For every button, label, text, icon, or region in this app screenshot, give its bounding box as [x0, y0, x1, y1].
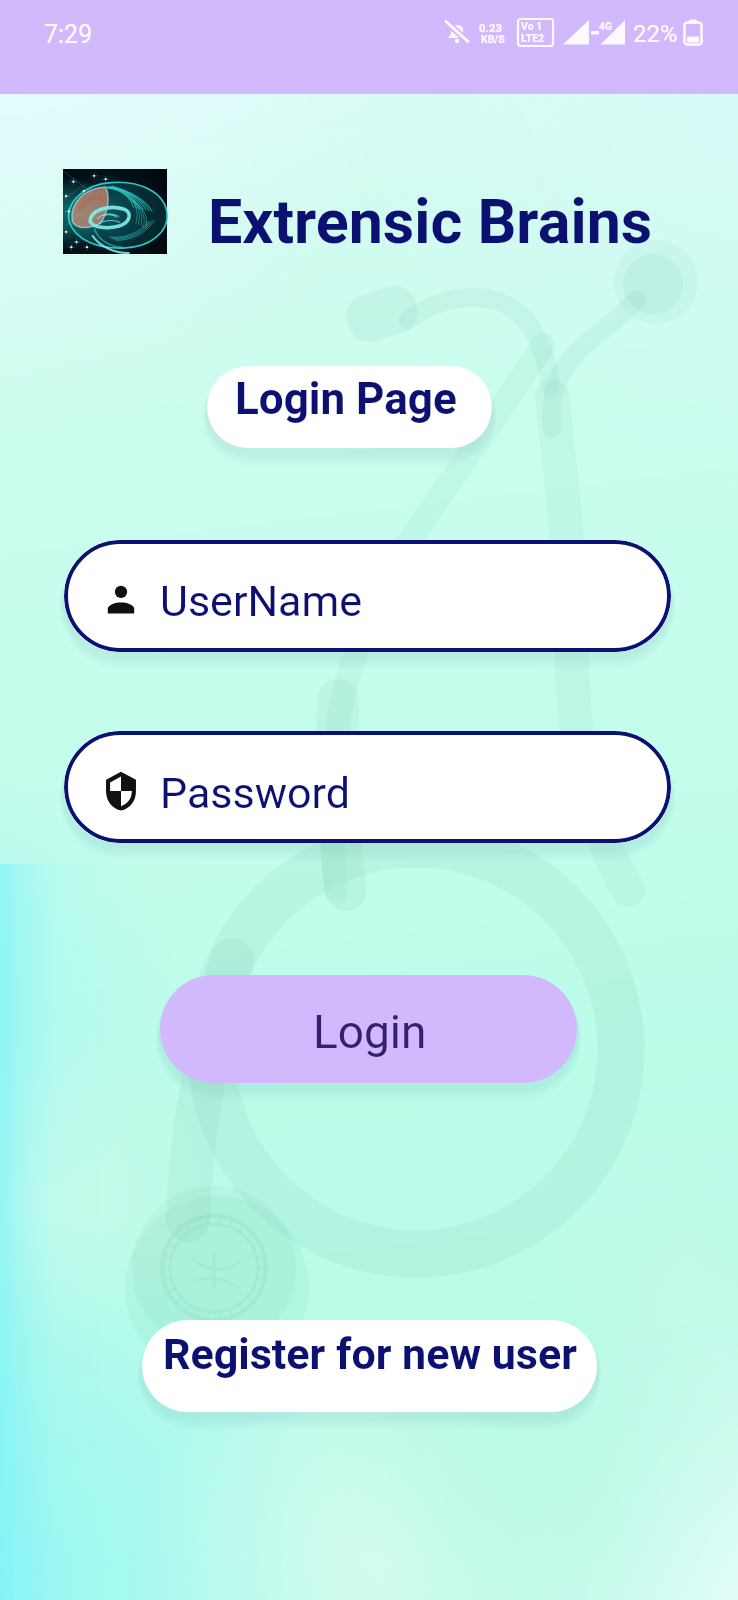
staticText: Vo 1 — [521, 20, 543, 32]
button[interactable]: Register for new user — [142, 1320, 597, 1412]
staticText: 7:29 — [44, 20, 93, 49]
staticText: 0.23 — [479, 21, 503, 34]
button[interactable]: Extrensic Brains logo — [63, 169, 167, 254]
button[interactable]: UserName — [64, 540, 671, 652]
staticText: LTE2 — [521, 32, 545, 44]
button[interactable]: Password — [64, 731, 671, 843]
button[interactable]: Login — [160, 975, 577, 1083]
staticText: 22% — [633, 20, 678, 48]
staticText: Password — [160, 768, 350, 818]
staticText: Login — [313, 1005, 427, 1059]
staticText: KB/S — [481, 33, 505, 45]
staticText: Register for new user — [163, 1329, 577, 1379]
staticText: UserName — [160, 576, 363, 626]
staticText: Login Page — [235, 373, 457, 425]
button[interactable]: Login Page — [207, 366, 492, 448]
staticText: Extrensic Brains — [208, 186, 653, 257]
staticText: 4G — [599, 20, 613, 32]
